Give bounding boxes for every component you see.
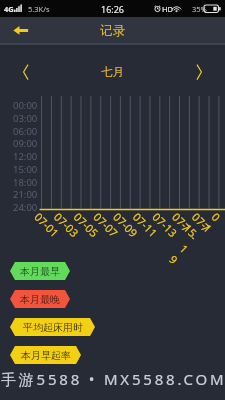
button[interactable]: 平均起床用时 <box>10 318 95 336</box>
button[interactable]: Next month <box>187 60 211 84</box>
staticText: 本月最晚 <box>20 293 60 306</box>
button[interactable]: Back <box>7 20 34 42</box>
staticText: 手游5588 • MX5588.COM <box>1 369 225 389</box>
staticText: 35% <box>192 4 207 14</box>
staticText: 本月早起率 <box>21 349 71 362</box>
staticText: HD <box>162 4 174 14</box>
button[interactable]: 本月最早 <box>10 262 70 280</box>
staticText: 平均起床用时 <box>23 321 83 334</box>
staticText: 记录 <box>100 23 125 39</box>
staticText: 4G <box>4 4 14 14</box>
staticText: 七月 <box>101 65 124 79</box>
button[interactable]: Previous month <box>14 60 38 84</box>
staticText: 5.3K/s <box>28 4 50 14</box>
button[interactable]: 本月早起率 <box>10 346 81 364</box>
staticText: 本月最早 <box>20 265 60 278</box>
staticText: 16:26 <box>101 3 125 15</box>
button[interactable]: 本月最晚 <box>10 290 70 308</box>
